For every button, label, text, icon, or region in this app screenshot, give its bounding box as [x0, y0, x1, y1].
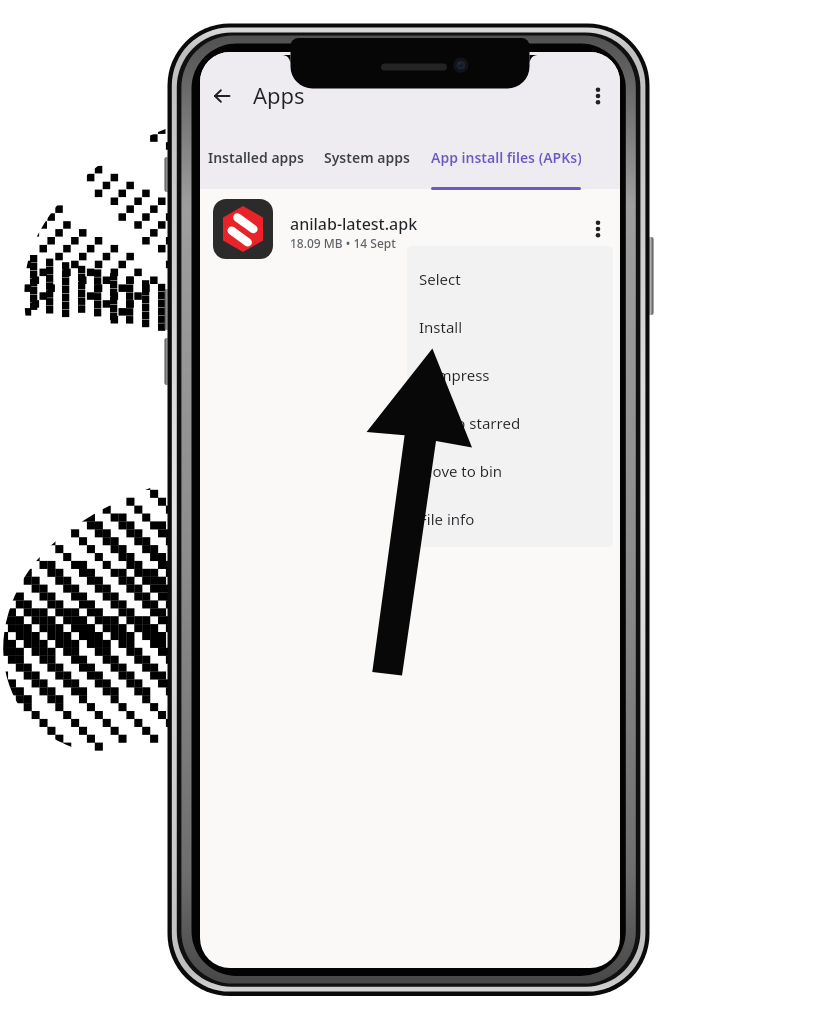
- button[interactable]: System apps: [324, 140, 416, 190]
- staticText: Apps: [253, 80, 305, 110]
- button[interactable]: Back: [206, 80, 238, 112]
- button[interactable]: More options: [582, 80, 614, 112]
- button[interactable]: File info: [407, 495, 613, 543]
- button[interactable]: File options: [582, 213, 614, 245]
- staticText: Move to bin: [419, 461, 503, 481]
- staticText: App install files (APKs): [431, 148, 581, 167]
- staticText: anilab-latest.apk: [290, 213, 418, 235]
- button[interactable]: Select: [407, 255, 613, 303]
- staticText: Install: [419, 317, 463, 337]
- staticText: Compress: [419, 365, 490, 385]
- button[interactable]: Add to starred: [407, 399, 613, 447]
- staticText: Select: [419, 269, 461, 289]
- button[interactable]: Move to bin: [407, 447, 613, 495]
- staticText: File info: [419, 509, 475, 529]
- button[interactable]: anilab-latest.apk: [200, 193, 620, 265]
- staticText: 18.09 MB • 14 Sept: [290, 235, 396, 251]
- button[interactable]: Install: [407, 303, 613, 351]
- staticText: Add to starred: [419, 413, 521, 433]
- button[interactable]: Installed apps: [208, 140, 308, 190]
- staticText: Installed apps: [208, 148, 305, 167]
- button[interactable]: App install files (APKs): [431, 140, 581, 190]
- staticText: System apps: [324, 148, 410, 167]
- button[interactable]: Compress: [407, 351, 613, 399]
